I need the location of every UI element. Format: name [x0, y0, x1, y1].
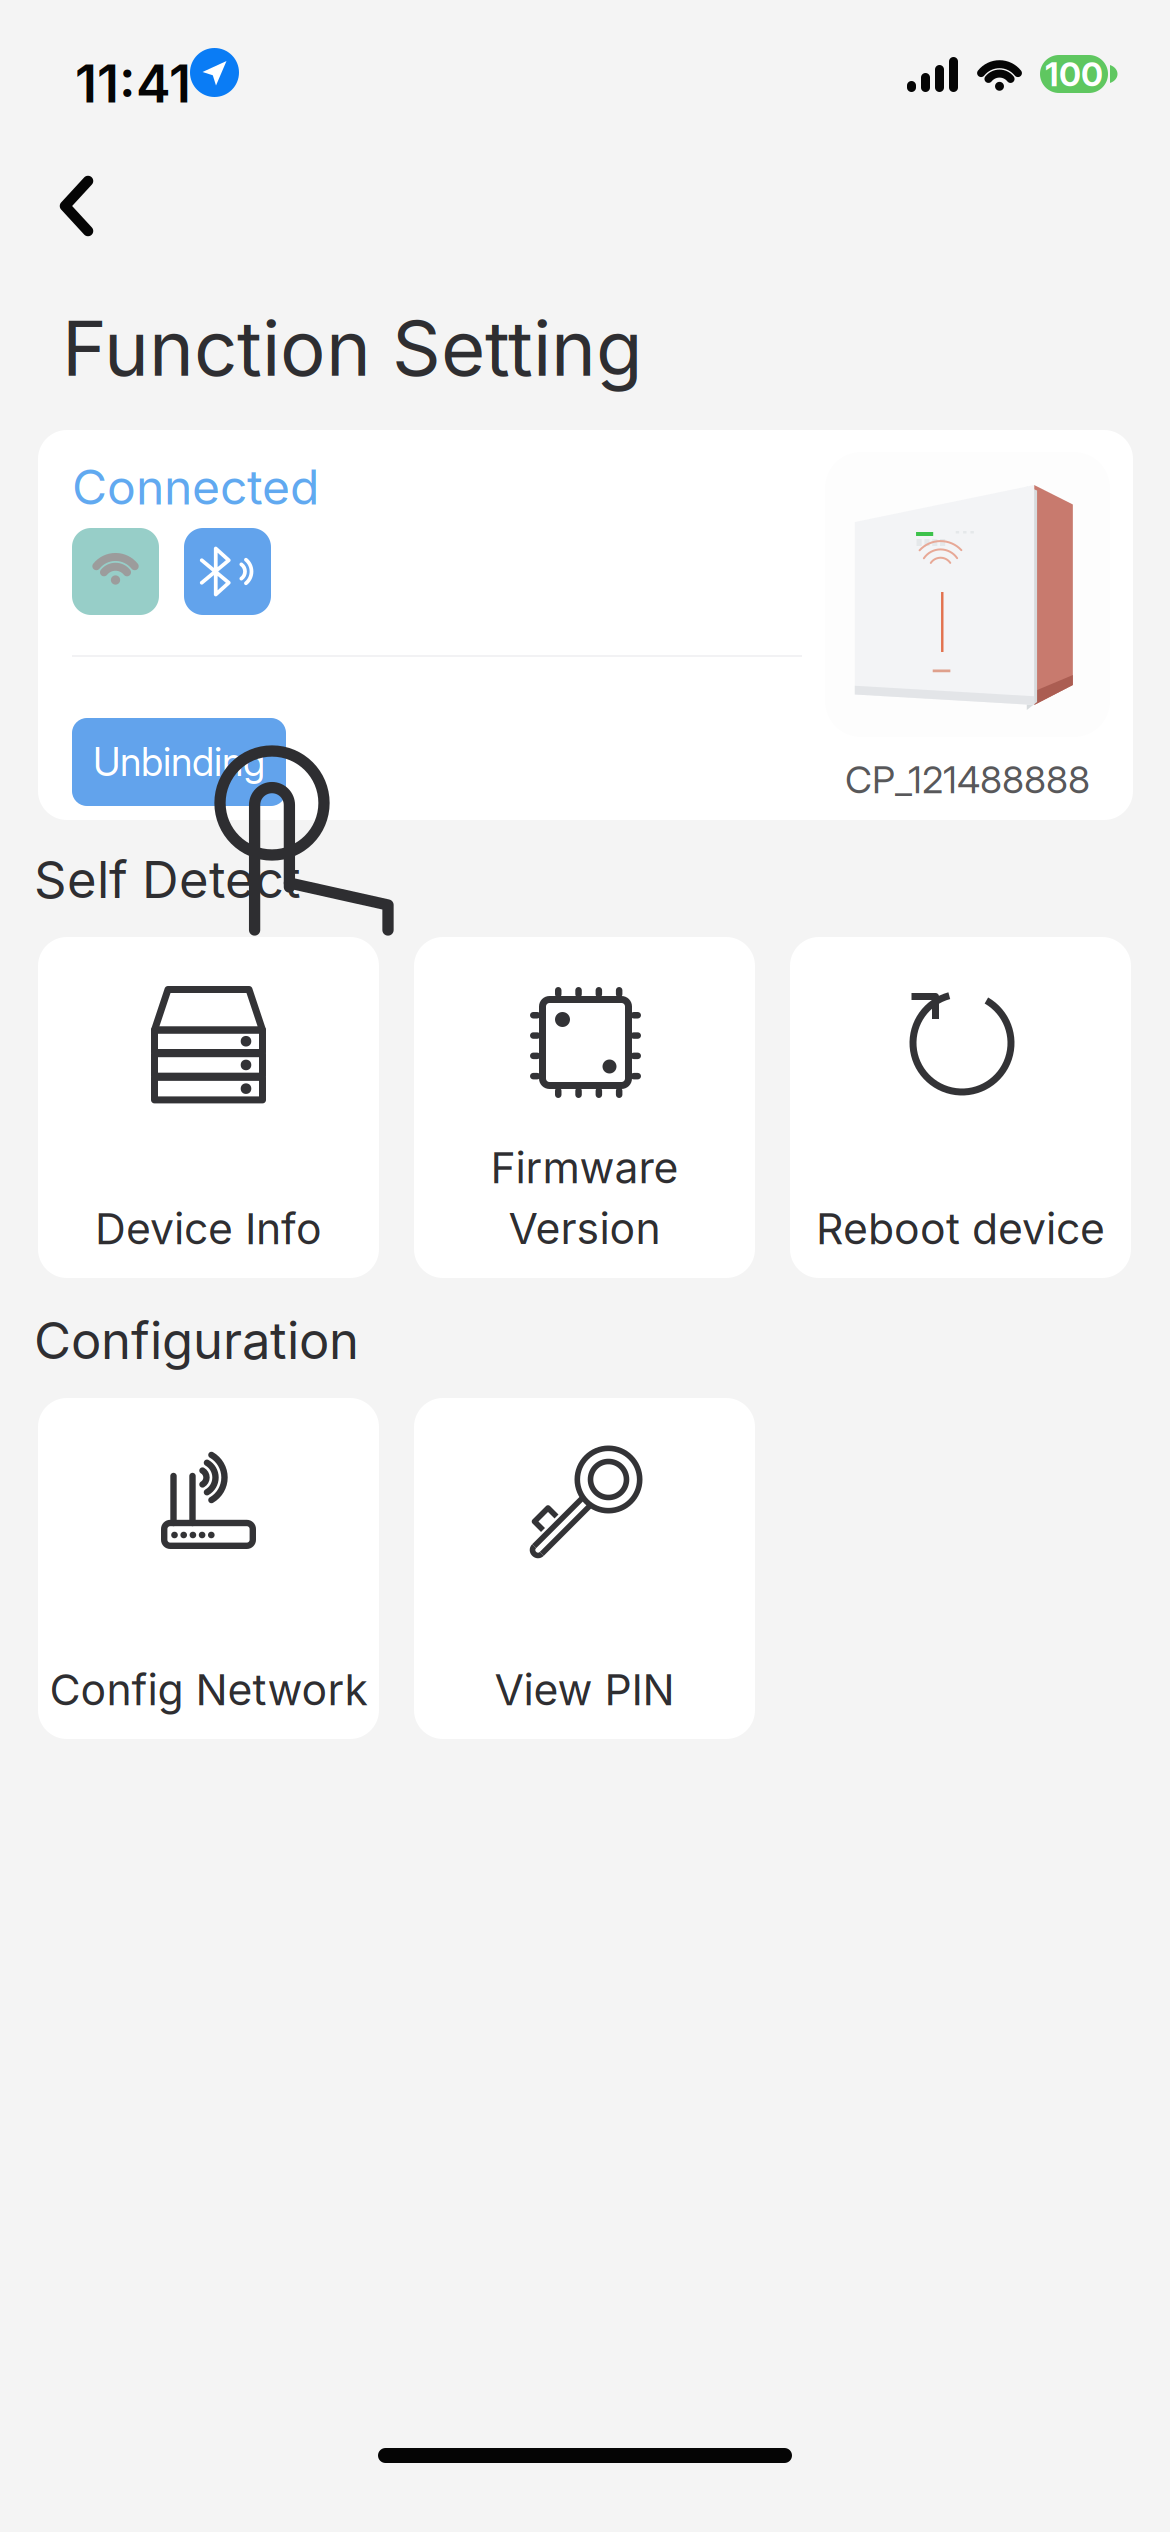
staticText: Firmware [490, 1142, 678, 1194]
button[interactable]: Device Info [38, 937, 379, 1278]
staticText: Unbinding [93, 739, 265, 785]
button[interactable]: Unbinding [72, 718, 286, 806]
staticText: 11:41 [75, 52, 191, 115]
staticText: Reboot device [816, 1203, 1105, 1255]
staticText: CP_121488888 [845, 757, 1090, 802]
staticText: View PIN [494, 1664, 674, 1716]
staticText: Version [508, 1203, 660, 1254]
button[interactable]: Reboot device [790, 937, 1131, 1278]
staticText: Function Setting [62, 302, 643, 394]
staticText: Self Detect [34, 849, 301, 910]
staticText: Connected [72, 458, 319, 516]
staticText: Configuration [34, 1310, 359, 1371]
button[interactable]: View PIN [414, 1398, 755, 1739]
button[interactable]: Firmware [414, 937, 755, 1278]
staticText: 100 [1045, 54, 1103, 94]
staticText: Config Network [49, 1664, 367, 1716]
button[interactable]: Back [24, 148, 134, 254]
staticText: Device Info [95, 1203, 322, 1255]
button[interactable]: Config Network [38, 1398, 379, 1739]
